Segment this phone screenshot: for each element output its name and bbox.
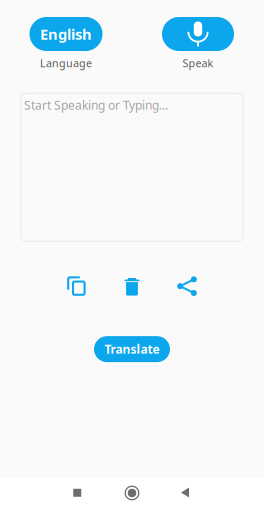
button[interactable]: Clear xyxy=(104,268,159,304)
button[interactable]: Start Speaking or Typing... xyxy=(21,93,243,241)
button[interactable]: Back xyxy=(174,482,198,508)
staticText: Translate xyxy=(104,341,159,357)
button[interactable]: Recent apps xyxy=(65,482,89,508)
staticText: Speak xyxy=(182,56,213,70)
button[interactable]: English xyxy=(29,17,102,51)
button[interactable]: Speak xyxy=(162,17,234,51)
button[interactable]: Copy xyxy=(49,268,104,304)
button[interactable]: Home xyxy=(120,484,144,505)
staticText: English xyxy=(40,24,92,44)
button[interactable]: Translate xyxy=(94,336,170,362)
button[interactable]: Share xyxy=(159,268,214,304)
staticText: Language xyxy=(40,56,92,70)
staticText: Start Speaking or Typing... xyxy=(24,97,168,113)
